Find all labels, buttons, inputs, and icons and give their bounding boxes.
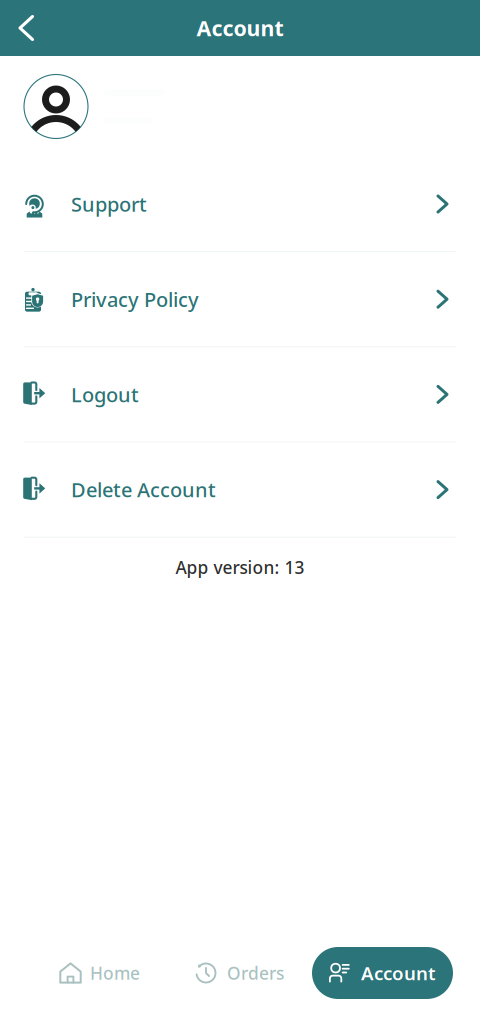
staticText: App version: 13 bbox=[175, 556, 304, 579]
staticText: Delete Account bbox=[71, 476, 216, 503]
button[interactable]: Back bbox=[6, 8, 46, 48]
button[interactable]: Support bbox=[0, 157, 480, 251]
staticText: Account bbox=[361, 961, 436, 985]
staticText: Privacy Policy bbox=[71, 286, 199, 312]
button[interactable]: Privacy Policy bbox=[0, 252, 480, 346]
staticText: Logout bbox=[71, 381, 139, 408]
button[interactable]: Logout bbox=[0, 347, 480, 441]
button[interactable]: Orders bbox=[180, 947, 298, 999]
staticText: Support bbox=[71, 191, 147, 217]
button[interactable]: Delete Account bbox=[0, 443, 480, 537]
button[interactable]: Account bbox=[312, 947, 453, 999]
staticText: Orders bbox=[227, 961, 284, 984]
staticText: Account bbox=[196, 14, 283, 42]
button[interactable]: Home bbox=[45, 947, 154, 999]
staticText: Home bbox=[90, 961, 140, 984]
